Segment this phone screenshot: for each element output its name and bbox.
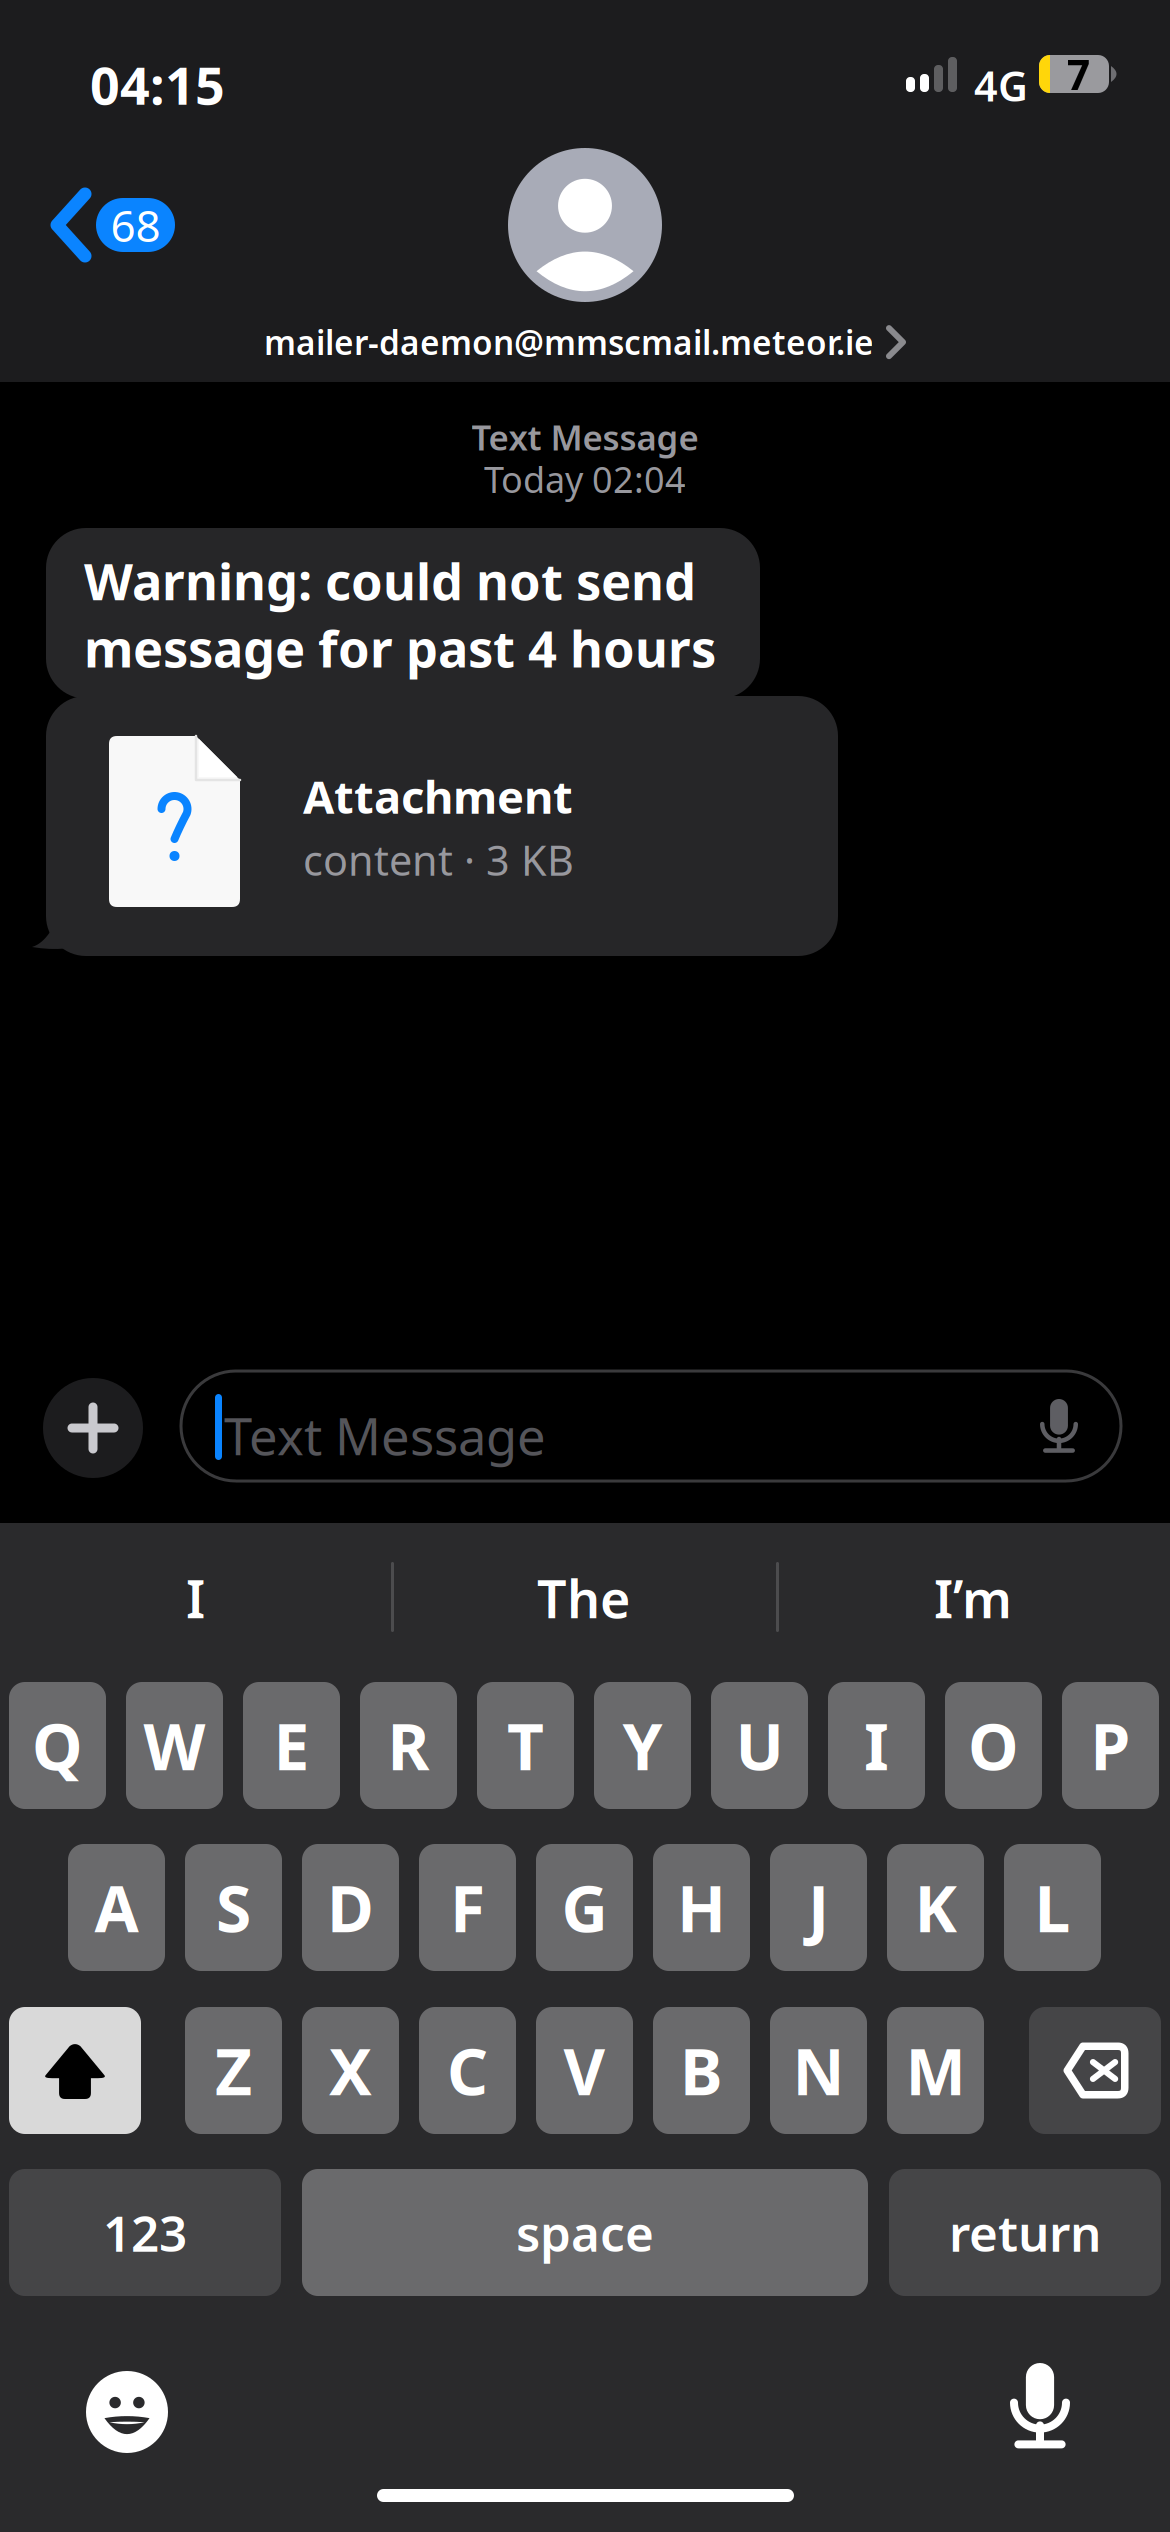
button[interactable]: C <box>419 2007 516 2134</box>
staticText: X <box>329 2028 372 2113</box>
staticText: space <box>516 2200 654 2265</box>
button[interactable]: L <box>1004 1844 1101 1971</box>
button[interactable]: Shift <box>9 2007 141 2134</box>
button[interactable]: G <box>536 1844 633 1971</box>
staticText: Attachment <box>303 766 573 826</box>
button[interactable]: mailer-daemon@mmscmail.meteor.ie <box>264 310 906 374</box>
button[interactable]: O <box>945 1682 1042 1809</box>
button[interactable]: P <box>1062 1682 1159 1809</box>
staticText: N <box>792 2028 844 2113</box>
staticText: Text Message <box>224 1402 546 1469</box>
staticText: Q <box>32 1703 83 1788</box>
staticText: L <box>1034 1865 1070 1950</box>
staticText: Warning: could not send message for past… <box>84 547 716 682</box>
staticText: The <box>537 1563 630 1633</box>
button[interactable]: S <box>185 1844 282 1971</box>
staticText: U <box>735 1703 783 1788</box>
staticText: 04:15 <box>90 50 225 119</box>
button[interactable]: T <box>477 1682 574 1809</box>
button[interactable]: space <box>302 2169 868 2296</box>
staticText: P <box>1090 1703 1130 1788</box>
button[interactable]: K <box>887 1844 984 1971</box>
staticText: R <box>387 1703 429 1788</box>
staticText: S <box>216 1865 251 1950</box>
staticText: E <box>273 1703 309 1788</box>
staticText: A <box>94 1865 138 1950</box>
staticText: C <box>447 2028 488 2113</box>
button[interactable]: B <box>653 2007 750 2134</box>
button[interactable]: I <box>828 1682 925 1809</box>
button[interactable]: Z <box>185 2007 282 2134</box>
staticText: 7 <box>1066 47 1090 101</box>
button[interactable]: Delete <box>1029 2007 1161 2134</box>
button[interactable]: X <box>302 2007 399 2134</box>
button[interactable]: N <box>770 2007 867 2134</box>
button[interactable]: Back to Messages, 68 unread <box>36 169 191 281</box>
staticText: content · 3 KB <box>303 832 574 887</box>
staticText: F <box>450 1865 485 1950</box>
staticText: Y <box>622 1703 662 1788</box>
staticText: W <box>143 1703 205 1788</box>
button[interactable]: 123 <box>9 2169 281 2296</box>
button[interactable]: U <box>711 1682 808 1809</box>
staticText: T <box>507 1703 544 1788</box>
staticText: I’m <box>934 1563 1012 1633</box>
button[interactable]: Attach media <box>43 1378 143 1478</box>
staticText: G <box>561 1865 607 1950</box>
button[interactable]: D <box>302 1844 399 1971</box>
button[interactable]: E <box>243 1682 340 1809</box>
button[interactable]: return <box>889 2169 1161 2296</box>
staticText: B <box>680 2028 723 2113</box>
staticText: Text Message <box>471 414 698 460</box>
staticText: H <box>677 1865 726 1950</box>
staticText: 68 <box>110 196 160 254</box>
button[interactable]: V <box>536 2007 633 2134</box>
staticText: V <box>563 2028 605 2113</box>
button[interactable]: A <box>68 1844 165 1971</box>
staticText: D <box>327 1865 374 1950</box>
staticText: mailer-daemon@mmscmail.meteor.ie <box>264 320 874 364</box>
button[interactable]: F <box>419 1844 516 1971</box>
staticText: K <box>914 1865 956 1950</box>
staticText: 4G <box>974 58 1028 113</box>
button[interactable]: Q <box>9 1682 106 1809</box>
staticText: 123 <box>103 2200 187 2265</box>
button[interactable]: H <box>653 1844 750 1971</box>
button[interactable]: W <box>126 1682 223 1809</box>
button[interactable]: Y <box>594 1682 691 1809</box>
staticText: J <box>808 1865 829 1950</box>
button[interactable]: J <box>770 1844 867 1971</box>
staticText: M <box>905 2028 965 2113</box>
button[interactable]: Dictation <box>1010 2363 1070 2448</box>
button[interactable]: Message field <box>181 1371 1121 1481</box>
staticText: return <box>949 2200 1101 2265</box>
button[interactable]: R <box>360 1682 457 1809</box>
staticText: Today 02:04 <box>484 455 686 503</box>
button[interactable]: Emoji keyboard <box>86 2371 168 2453</box>
staticText: Z <box>215 2028 252 2113</box>
staticText: I <box>186 1563 205 1633</box>
staticText: O <box>968 1703 1019 1788</box>
staticText: I <box>864 1703 889 1788</box>
button[interactable]: M <box>887 2007 984 2134</box>
